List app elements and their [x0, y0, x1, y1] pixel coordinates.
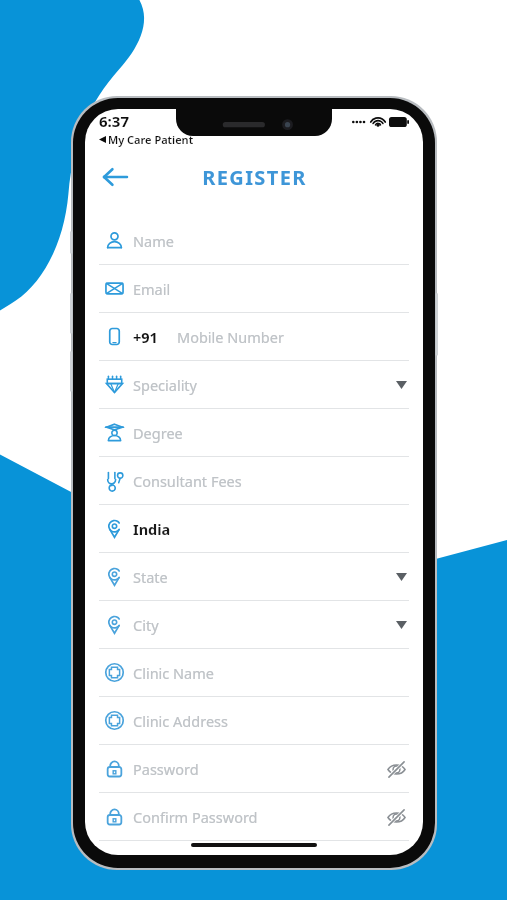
button[interactable]: Back: [93, 157, 137, 197]
button[interactable]: Speciality: [99, 361, 409, 409]
staticText: Password: [133, 759, 199, 779]
button[interactable]: India: [99, 505, 409, 553]
staticText: REGISTER: [202, 164, 307, 191]
staticText: Clinic Address: [133, 711, 228, 731]
button[interactable]: State: [99, 553, 409, 601]
staticText: Clinic Name: [133, 663, 214, 683]
staticText: Name: [133, 231, 174, 251]
button[interactable]: Confirm Password: [99, 793, 409, 841]
staticText: Mobile Number: [177, 327, 284, 347]
staticText: City: [133, 615, 159, 635]
button[interactable]: Password: [99, 745, 409, 793]
button[interactable]: Name: [99, 217, 409, 265]
staticText: My Care Patient: [108, 132, 194, 147]
button[interactable]: Clinic Name: [99, 649, 409, 697]
button[interactable]: +91: [99, 313, 409, 361]
staticText: India: [133, 519, 171, 539]
button[interactable]: City: [99, 601, 409, 649]
button[interactable]: Show password: [383, 756, 409, 782]
staticText: 6:37: [99, 111, 129, 131]
button[interactable]: Degree: [99, 409, 409, 457]
staticText: Degree: [133, 423, 183, 443]
button[interactable]: Show password: [383, 804, 409, 830]
staticText: Email: [133, 279, 171, 299]
staticText: Speciality: [133, 375, 198, 395]
button[interactable]: Email: [99, 265, 409, 313]
staticText: Confirm Password: [133, 807, 258, 827]
staticText: +91: [133, 327, 158, 347]
staticText: State: [133, 567, 168, 587]
button[interactable]: Clinic Address: [99, 697, 409, 745]
staticText: Consultant Fees: [133, 471, 242, 491]
button[interactable]: Consultant Fees: [99, 457, 409, 505]
